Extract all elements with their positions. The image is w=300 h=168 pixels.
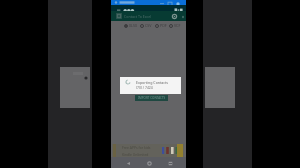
button[interactable]: Home xyxy=(144,158,154,168)
staticText: PDF xyxy=(160,23,167,28)
button[interactable]: Next video xyxy=(203,0,252,168)
staticText: IMPORT CONTACTS xyxy=(138,96,166,100)
staticText: CSV xyxy=(145,23,152,28)
staticText: (70) / 7424 xyxy=(136,85,153,90)
button[interactable]: Back xyxy=(123,158,133,168)
button[interactable]: Previous video xyxy=(48,0,92,168)
button[interactable]: More options xyxy=(179,13,186,20)
staticText: Contact To Excel xyxy=(124,14,152,19)
button[interactable]: VCF xyxy=(169,23,181,28)
staticText: Kindle Unlimited xyxy=(122,152,149,157)
button[interactable]: XLSX xyxy=(124,23,138,28)
button[interactable]: PDF xyxy=(155,23,167,28)
button[interactable]: Advertisement xyxy=(112,144,184,157)
staticText: XLSX xyxy=(129,23,138,28)
button[interactable]: Recents xyxy=(165,158,175,168)
staticText: VCF xyxy=(174,23,181,28)
button[interactable]: IMPORT CONTACTS xyxy=(135,95,168,101)
staticText: Free APPs for kids xyxy=(122,145,151,150)
button[interactable]: CSV xyxy=(140,23,152,28)
button[interactable]: Settings xyxy=(170,12,179,21)
staticText: Exporting Contacts xyxy=(136,80,169,85)
